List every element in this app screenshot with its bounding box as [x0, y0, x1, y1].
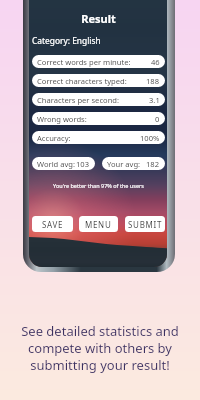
- button[interactable]: World avg:: [32, 157, 95, 170]
- staticText: 182: [146, 159, 160, 169]
- staticText: 103: [76, 159, 90, 169]
- staticText: Characters per second:: [37, 95, 120, 105]
- staticText: Correct characters typed:: [37, 76, 127, 86]
- staticText: Wrong words:: [37, 114, 87, 124]
- staticText: 46: [151, 57, 160, 67]
- staticText: You're better than 97% of the users: [32, 182, 165, 189]
- staticText: World avg:: [37, 159, 76, 169]
- staticText: 3.1: [149, 95, 160, 105]
- button[interactable]: Accuracy:: [32, 131, 165, 144]
- button[interactable]: Characters per second:: [32, 93, 165, 106]
- staticText: Result: [32, 11, 165, 26]
- button[interactable]: MENU: [79, 216, 118, 232]
- staticText: MENU: [85, 219, 112, 230]
- button[interactable]: SAVE: [32, 216, 73, 232]
- staticText: SAVE: [42, 219, 64, 230]
- button[interactable]: Correct words per minute:: [32, 55, 165, 68]
- button[interactable]: SUBMIT: [125, 216, 165, 232]
- staticText: 188: [146, 76, 160, 86]
- button[interactable]: Your avg:: [102, 157, 165, 170]
- staticText: Your avg:: [107, 159, 141, 169]
- button[interactable]: Wrong words:: [32, 112, 165, 125]
- staticText: SUBMIT: [128, 219, 163, 230]
- staticText: 0: [155, 114, 160, 124]
- staticText: 100%: [140, 133, 160, 143]
- staticText: Accuracy:: [37, 133, 71, 143]
- staticText: Correct words per minute:: [37, 57, 131, 67]
- button[interactable]: Correct characters typed:: [32, 74, 165, 87]
- staticText: See detailed statistics and compete with…: [6, 322, 194, 374]
- staticText: Category: English: [32, 35, 101, 46]
